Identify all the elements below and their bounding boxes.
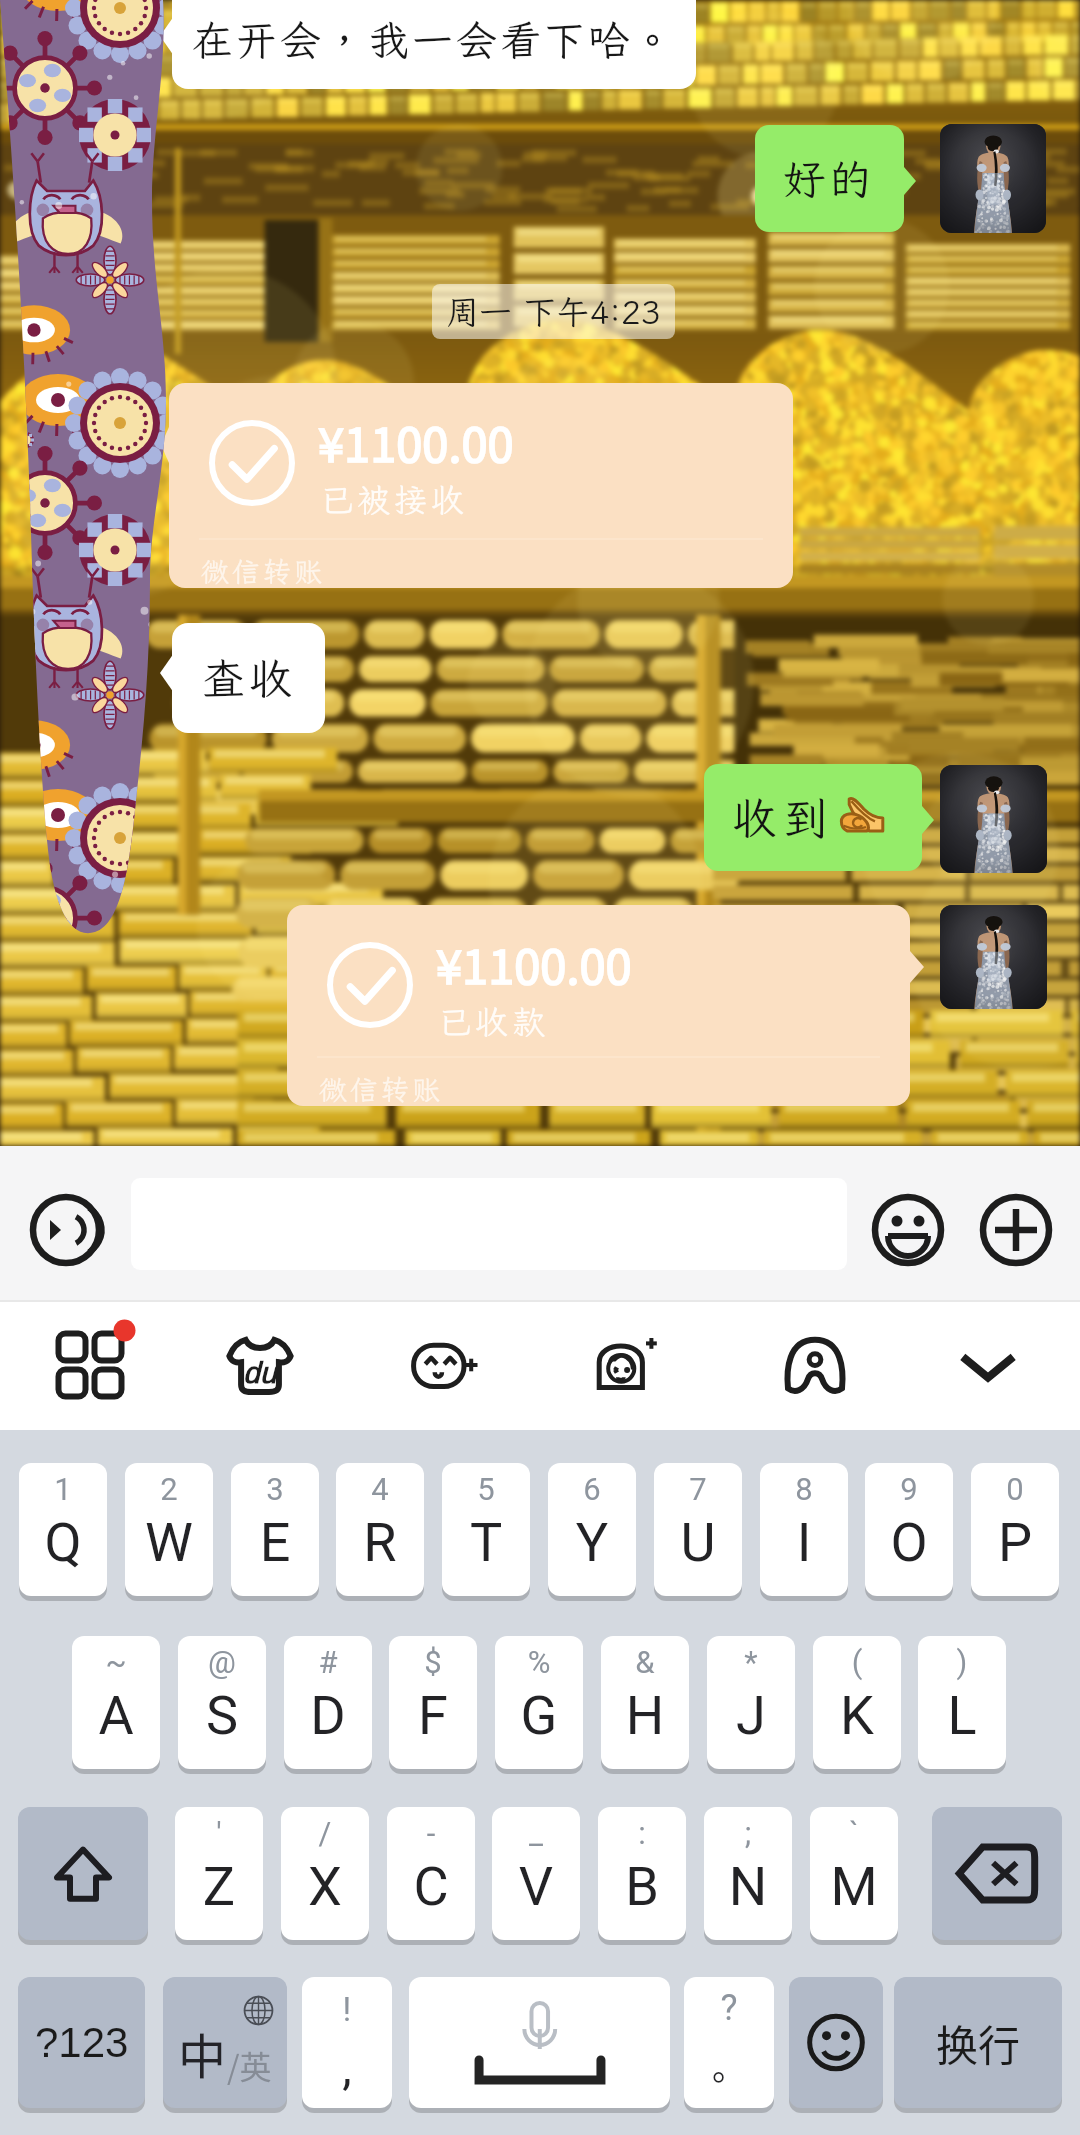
button[interactable]: ? xyxy=(684,1977,774,2108)
button[interactable]: 9 xyxy=(865,1463,953,1596)
staticText: / xyxy=(281,1815,369,1851)
button[interactable]: 查收 xyxy=(172,623,325,733)
button[interactable]: 2 xyxy=(125,1463,213,1596)
staticText: ~ xyxy=(72,1644,160,1680)
staticText: 好的 xyxy=(783,151,876,206)
button[interactable]: 6 xyxy=(548,1463,636,1596)
button[interactable]: ¥1100.00 xyxy=(287,905,910,1106)
staticText: J xyxy=(707,1684,795,1747)
staticText: 2 xyxy=(125,1471,213,1507)
button[interactable]: ~ xyxy=(72,1636,160,1769)
staticText: & xyxy=(601,1644,689,1680)
staticText: _ xyxy=(492,1815,580,1851)
button[interactable]: key xyxy=(18,1807,148,1940)
staticText: G xyxy=(495,1684,583,1747)
staticText: ¥1100.00 xyxy=(318,407,514,475)
button[interactable]: Avatar xyxy=(940,765,1047,873)
staticText: 5 xyxy=(442,1471,530,1507)
staticText: N xyxy=(704,1855,792,1918)
button[interactable]: Voice change xyxy=(770,1320,860,1410)
button[interactable]: / xyxy=(281,1807,369,1940)
button[interactable]: 在开会，我一会看下哈。 xyxy=(172,0,696,89)
staticText: O xyxy=(865,1511,953,1574)
staticText: * xyxy=(707,1644,795,1680)
staticText: $ xyxy=(389,1644,477,1680)
staticText: % xyxy=(495,1644,583,1680)
staticText: R xyxy=(336,1511,424,1574)
button[interactable]: 5 xyxy=(442,1463,530,1596)
staticText: 收到 xyxy=(732,789,836,847)
button[interactable]: Skin xyxy=(215,1320,305,1410)
staticText: I xyxy=(760,1511,848,1574)
staticText: B xyxy=(598,1855,686,1918)
button[interactable]: $ xyxy=(389,1636,477,1769)
button[interactable]: 中 xyxy=(163,1977,287,2108)
staticText: : xyxy=(598,1815,686,1851)
button[interactable]: % xyxy=(495,1636,583,1769)
staticText: Z xyxy=(175,1855,263,1918)
button[interactable]: key xyxy=(789,1977,883,2108)
button[interactable]: ) xyxy=(918,1636,1006,1769)
staticText: ! xyxy=(302,1989,392,2029)
staticText: S xyxy=(178,1684,266,1747)
button[interactable]: Hide keyboard xyxy=(943,1320,1033,1410)
staticText: - xyxy=(387,1815,475,1851)
staticText: ' xyxy=(175,1815,263,1851)
staticText: 查收 xyxy=(202,650,296,707)
button[interactable]: 好的 xyxy=(783,125,876,232)
staticText: W xyxy=(125,1511,213,1574)
button[interactable]: ` xyxy=(810,1807,898,1940)
staticText: 中 xyxy=(178,2018,227,2088)
button[interactable]: 4 xyxy=(336,1463,424,1596)
button[interactable]: Apps xyxy=(45,1320,135,1410)
staticText: 3 xyxy=(231,1471,319,1507)
staticText: ?123 xyxy=(35,2019,129,2066)
button[interactable]: ' xyxy=(175,1807,263,1940)
button[interactable]: 收到 xyxy=(732,764,894,871)
staticText: P xyxy=(971,1511,1059,1574)
staticText: X xyxy=(281,1855,369,1918)
staticText: 8 xyxy=(760,1471,848,1507)
button[interactable]: 3 xyxy=(231,1463,319,1596)
button[interactable]: 7 xyxy=(654,1463,742,1596)
staticText: du xyxy=(243,1356,277,1390)
button[interactable]: Stickers xyxy=(401,1320,491,1410)
button[interactable]: Emoji xyxy=(866,1188,950,1272)
button[interactable]: More xyxy=(974,1188,1058,1272)
button[interactable]: # xyxy=(284,1636,372,1769)
button[interactable]: ( xyxy=(813,1636,901,1769)
button[interactable]: - xyxy=(387,1807,475,1940)
staticText: 换行 xyxy=(936,2012,1021,2073)
button[interactable]: Avatar xyxy=(940,124,1046,233)
button[interactable]: 换行 xyxy=(894,1977,1062,2108)
staticText: 。 xyxy=(684,2041,774,2090)
staticText: @ xyxy=(178,1644,266,1680)
button[interactable]: & xyxy=(601,1636,689,1769)
staticText: 9 xyxy=(865,1471,953,1507)
button[interactable]: Voice input xyxy=(24,1188,108,1272)
button[interactable]: _ xyxy=(492,1807,580,1940)
staticText: # xyxy=(284,1644,372,1680)
button[interactable]: Avatar xyxy=(940,905,1047,1009)
staticText: 微信转账 xyxy=(319,1071,444,1106)
staticText: 0 xyxy=(971,1471,1059,1507)
button[interactable]: * xyxy=(707,1636,795,1769)
button[interactable]: Avatar stickers xyxy=(583,1320,673,1410)
staticText: M xyxy=(810,1855,898,1918)
button[interactable]: ; xyxy=(704,1807,792,1940)
staticText: 7 xyxy=(654,1471,742,1507)
button[interactable]: ?123 xyxy=(18,1977,145,2108)
button[interactable]: ! xyxy=(302,1977,392,2108)
staticText: C xyxy=(387,1855,475,1918)
button[interactable]: 0 xyxy=(971,1463,1059,1596)
button[interactable]: @ xyxy=(178,1636,266,1769)
staticText: 在开会，我一会看下哈。 xyxy=(192,13,676,67)
staticText: 4 xyxy=(336,1471,424,1507)
button[interactable]: 8 xyxy=(760,1463,848,1596)
button[interactable]: 1 xyxy=(19,1463,107,1596)
button[interactable] xyxy=(409,1977,670,2108)
button[interactable]: key xyxy=(932,1807,1062,1940)
button[interactable]: ¥1100.00 xyxy=(169,383,793,588)
button[interactable]: : xyxy=(598,1807,686,1940)
